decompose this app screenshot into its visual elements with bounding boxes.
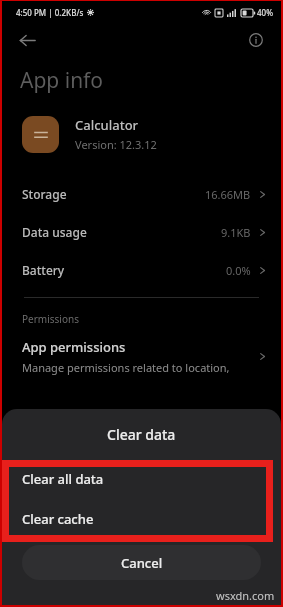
staticText: Cancel <box>121 554 163 572</box>
staticText: Storage <box>22 186 67 202</box>
staticText: Clear all data <box>22 470 104 488</box>
button[interactable]: Data usage <box>2 213 281 251</box>
staticText: App info <box>20 66 104 95</box>
button[interactable]: Storage <box>2 175 281 213</box>
button[interactable]: App permissions <box>2 338 281 375</box>
staticText: 9.1KB <box>221 225 251 240</box>
staticText: 16.66MB <box>205 187 251 202</box>
staticText: Clear cache <box>22 510 94 528</box>
staticText: wsxdn.com <box>216 588 275 603</box>
staticText: Battery <box>22 262 65 278</box>
staticText: Calculator <box>75 116 139 134</box>
staticText: App permissions <box>22 338 126 356</box>
button[interactable]: Back <box>12 25 42 55</box>
staticText: 0.0% <box>226 263 251 278</box>
staticText: 4:50 PM | 0.2KB/s <box>16 7 84 18</box>
staticText: Version: 12.3.12 <box>75 137 157 152</box>
button[interactable]: Cancel <box>22 545 261 580</box>
button[interactable]: About <box>241 25 271 55</box>
button[interactable]: Battery <box>2 251 281 289</box>
staticText: 40% <box>257 7 273 18</box>
staticText: Clear data <box>107 425 176 444</box>
button[interactable]: Clear all data <box>2 459 281 499</box>
staticText: Data usage <box>22 224 87 240</box>
button[interactable]: Clear cache <box>2 499 281 539</box>
staticText: Permissions <box>22 312 79 326</box>
staticText: Manage permissions related to location, … <box>22 360 252 375</box>
